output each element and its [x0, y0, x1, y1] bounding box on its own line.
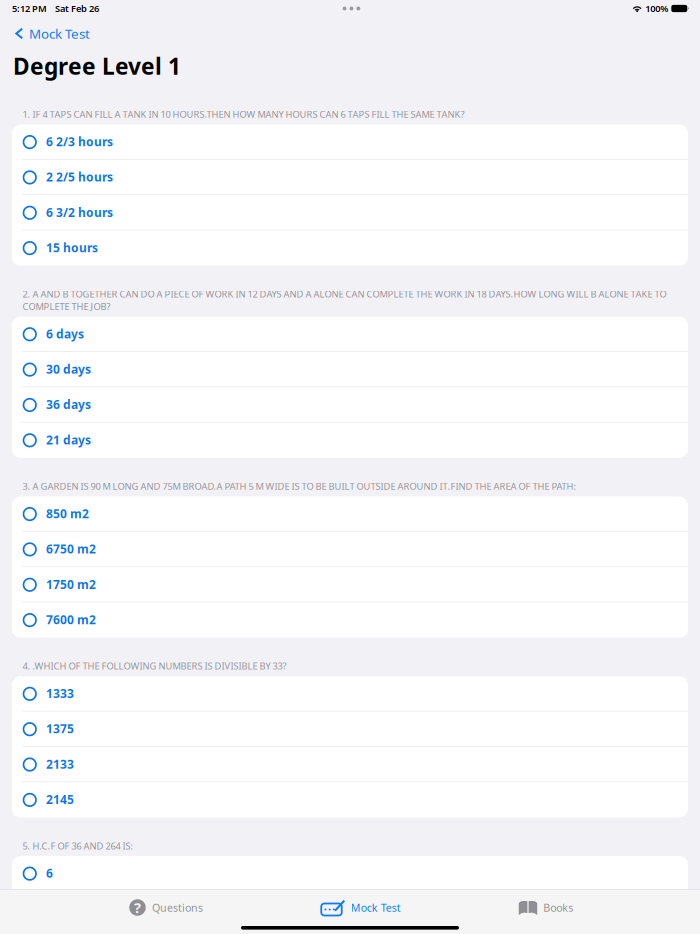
button[interactable]: 12	[12, 891, 688, 927]
button[interactable]: Mock Test	[296, 891, 426, 919]
staticText: 2. A AND B TOGETHER CAN DO A PIECE OF WO…	[22, 288, 666, 313]
button[interactable]: 15 hours	[12, 230, 688, 266]
staticText: 6750 m2	[46, 541, 96, 557]
staticText: 4. .WHICH OF THE FOLLOWING NUMBERS IS DI…	[22, 660, 286, 672]
button[interactable]: 850 m2	[12, 496, 688, 532]
staticText: 6 days	[46, 326, 84, 342]
staticText: 6 3/2 hours	[46, 204, 113, 220]
button[interactable]: 1750 m2	[12, 567, 688, 602]
staticText: ?	[134, 898, 141, 917]
staticText: Degree Level 1	[13, 51, 181, 81]
button[interactable]: 21 days	[12, 423, 688, 458]
button[interactable]: 6 3/2 hours	[12, 195, 688, 230]
staticText: 1. IF 4 TAPS CAN FILL A TANK IN 10 HOURS…	[22, 108, 464, 120]
staticText: 6 2/3 hours	[46, 134, 113, 149]
button[interactable]: 1375	[12, 711, 688, 747]
button[interactable]: 1333	[12, 676, 688, 712]
button[interactable]: 2145	[12, 782, 688, 818]
staticText: 1750 m2	[46, 576, 96, 592]
staticText: 21 days	[46, 432, 91, 448]
staticText: 15 hours	[46, 240, 98, 256]
staticText: 30 days	[46, 361, 91, 377]
staticText: 5. H.C.F OF 36 AND 264 IS:	[22, 840, 133, 852]
button[interactable]: 30 days	[12, 352, 688, 387]
button[interactable]: 18	[12, 927, 688, 934]
staticText: 1375	[46, 721, 74, 737]
button[interactable]: 6 days	[12, 317, 688, 352]
staticText: 2133	[46, 756, 74, 772]
staticText: Books	[543, 900, 573, 915]
button[interactable]: 36 days	[12, 387, 688, 423]
button[interactable]: ?	[101, 891, 231, 919]
button[interactable]: 6	[12, 856, 688, 891]
staticText: Mock Test	[29, 25, 90, 42]
staticText: 100%	[645, 2, 668, 15]
staticText: 7600 m2	[46, 612, 96, 627]
button[interactable]: 2 2/5 hours	[12, 160, 688, 195]
staticText: Sat Feb 26	[55, 2, 99, 15]
staticText: 6	[46, 865, 53, 881]
button[interactable]: Mock Test	[0, 17, 700, 50]
staticText: Mock Test	[351, 900, 401, 915]
button[interactable]: 2133	[12, 747, 688, 782]
button[interactable]: 6750 m2	[12, 532, 688, 567]
staticText: 1333	[46, 685, 74, 701]
staticText: 2 2/5 hours	[46, 169, 113, 185]
staticText: 5:12 PM	[12, 2, 47, 15]
button[interactable]: 6 2/3 hours	[12, 124, 688, 160]
staticText: 36 days	[46, 396, 91, 412]
staticText: Questions	[152, 900, 203, 915]
staticText: 850 m2	[46, 506, 89, 521]
button[interactable]: Books	[481, 891, 611, 919]
staticText: 2145	[46, 791, 74, 807]
staticText: 3. A GARDEN IS 90 M LONG AND 75M BROAD.A…	[22, 480, 576, 492]
button[interactable]: 7600 m2	[12, 602, 688, 638]
